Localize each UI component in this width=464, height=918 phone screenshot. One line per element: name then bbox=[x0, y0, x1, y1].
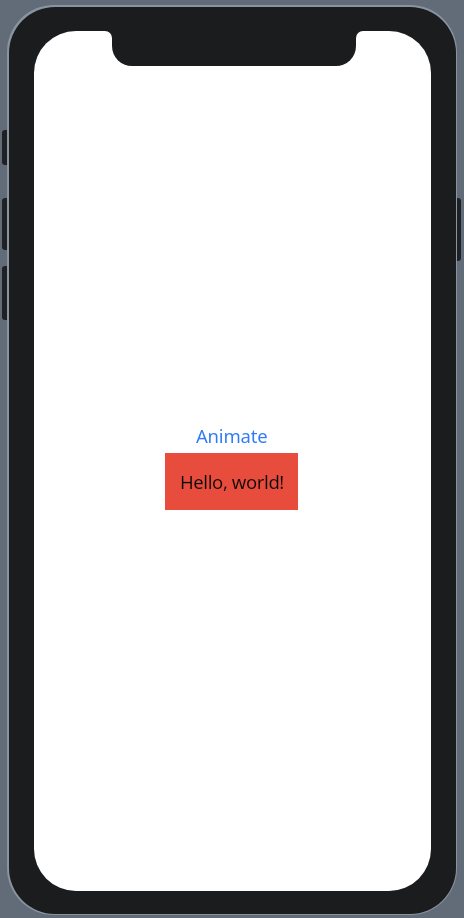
staticText: Hello, world! bbox=[180, 469, 284, 494]
staticText: Animate bbox=[196, 423, 268, 448]
button[interactable]: Hello, world! bbox=[165, 453, 298, 510]
button[interactable]: Animate bbox=[196, 423, 268, 448]
